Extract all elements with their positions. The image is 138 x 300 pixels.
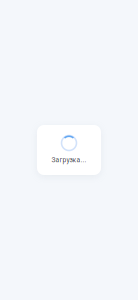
staticText: Загрузка... xyxy=(51,156,86,164)
